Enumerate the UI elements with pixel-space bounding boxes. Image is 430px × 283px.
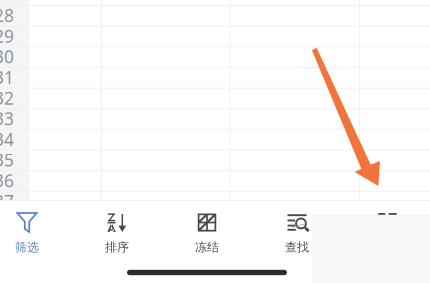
staticText: 30	[0, 45, 14, 68]
staticText: 36	[0, 169, 14, 192]
staticText: 排序	[105, 240, 129, 255]
button[interactable]: 冻结	[162, 200, 252, 283]
staticText: 37	[0, 190, 14, 213]
staticText: 35	[0, 148, 14, 171]
button[interactable]: 查找	[252, 200, 342, 283]
staticText: 32	[0, 86, 14, 109]
staticText: 29	[0, 24, 14, 47]
staticText: 筛选	[15, 240, 39, 255]
staticText: 冻结	[195, 240, 219, 255]
staticText: 查找	[285, 240, 309, 255]
staticText: 28	[0, 4, 14, 27]
staticText: 34	[0, 128, 14, 151]
button[interactable]: 筛选	[0, 200, 72, 283]
button[interactable]: 排序	[72, 200, 162, 283]
staticText: 31	[0, 66, 14, 89]
staticText: 33	[0, 107, 14, 130]
